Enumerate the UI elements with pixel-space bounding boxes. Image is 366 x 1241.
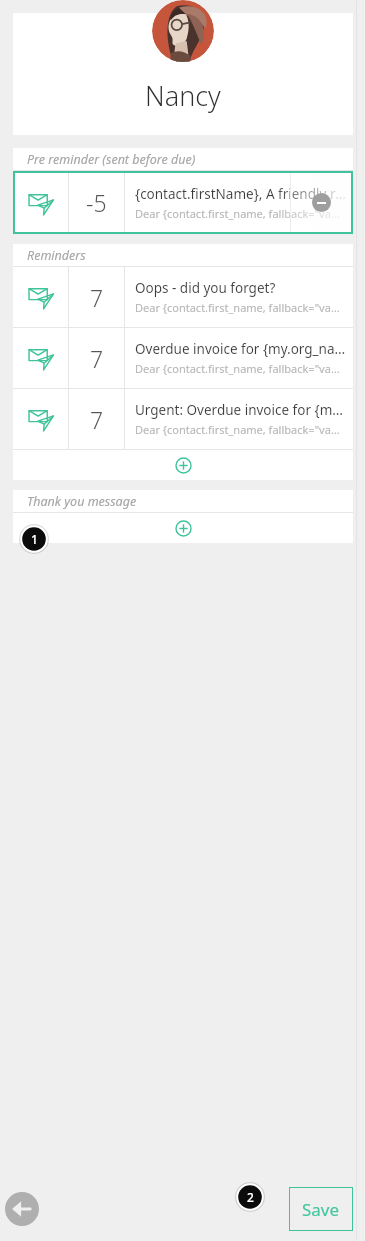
staticText: 1 <box>31 531 38 547</box>
button[interactable]: -5 <box>13 171 353 234</box>
staticText: Overdue invoice for {my.org_na… <box>135 340 346 358</box>
button[interactable]: Add <box>13 513 353 543</box>
staticText: Dear {contact.first_name, fallback="va… <box>135 206 340 221</box>
staticText: 2 <box>247 1189 254 1205</box>
staticText: Reminders <box>27 247 86 264</box>
button[interactable]: 7 <box>13 328 353 388</box>
staticText: Thank you message <box>27 493 137 510</box>
button[interactable]: Nancy <box>13 13 353 135</box>
button[interactable]: Remove <box>312 193 331 212</box>
staticText: Dear {contact.first_name, fallback="va… <box>135 300 340 315</box>
button[interactable]: Back <box>4 1191 40 1227</box>
staticText: Pre reminder (sent before due) <box>27 151 196 168</box>
staticText: 7 <box>90 282 104 313</box>
staticText: 7 <box>90 404 104 435</box>
staticText: 7 <box>90 343 104 374</box>
button[interactable]: 7 <box>13 389 353 449</box>
staticText: Save <box>302 1198 340 1221</box>
staticText: Nancy <box>145 77 221 114</box>
button[interactable]: 7 <box>13 267 353 327</box>
staticText: Oops - did you forget? <box>135 279 276 297</box>
staticText: -5 <box>86 187 107 218</box>
button[interactable]: Add <box>13 450 353 480</box>
staticText: Urgent: Overdue invoice for {my… <box>135 401 347 419</box>
staticText: Dear {contact.first_name, fallback="va… <box>135 422 340 437</box>
staticText: {contact.firstName}, A friendly re… <box>135 185 347 203</box>
button[interactable]: Save <box>289 1187 353 1231</box>
staticText: Dear {contact.first_name, fallback="va… <box>135 361 340 376</box>
